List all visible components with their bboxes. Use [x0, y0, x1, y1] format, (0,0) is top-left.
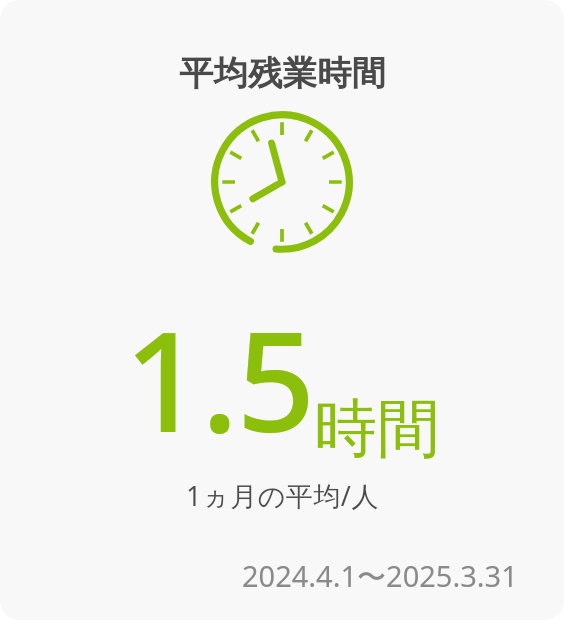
staticText: 1ヵ月の平均/人: [186, 477, 379, 514]
staticText: 2024.4.1〜2025.3.31: [242, 556, 518, 596]
other: Clock: [210, 110, 354, 254]
button[interactable]: 平均残業時間: [0, 0, 564, 620]
staticText: 時間: [314, 389, 440, 468]
staticText: 平均残業時間: [179, 52, 386, 95]
staticText: 1.5: [124, 284, 314, 472]
